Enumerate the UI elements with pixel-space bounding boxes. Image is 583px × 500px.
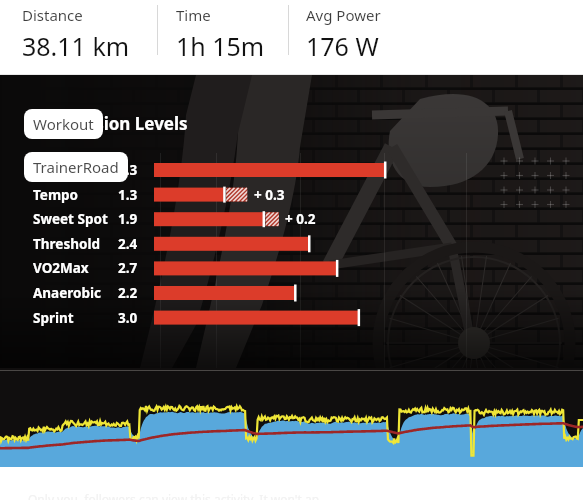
staticText: Workout [33, 114, 94, 134]
staticText: 3.0 [118, 309, 138, 327]
staticText: 176 W [306, 29, 379, 63]
staticText: 1h 15m [176, 29, 265, 63]
staticText: 1.9 [118, 210, 138, 228]
staticText: VO2Max [33, 259, 89, 277]
button[interactable]: TrainerRoad [24, 152, 128, 182]
staticText: Endurance [33, 161, 105, 179]
button[interactable]: Avg Power [306, 5, 381, 63]
staticText: 2.7 [118, 259, 138, 277]
button[interactable]: Workout [24, 109, 103, 139]
button[interactable]: Time [176, 5, 265, 63]
button[interactable]: Workout power and heart rate chart [0, 368, 583, 467]
staticText: TrainerRoad [33, 157, 119, 177]
staticText: 3.3 [118, 161, 138, 179]
staticText: Time [176, 5, 211, 25]
staticText: Avg Power [306, 5, 381, 25]
staticText: Threshold [33, 235, 100, 253]
staticText: 1.3 [118, 186, 138, 204]
staticText: Anaerobic [33, 284, 101, 302]
staticText: + 0.3 [254, 186, 285, 204]
staticText: Only you, followers can view this activi… [28, 491, 320, 500]
staticText: 2.4 [118, 235, 138, 253]
staticText: 38.11 km [22, 29, 130, 63]
staticText: Tempo [33, 186, 79, 204]
button[interactable]: Distance [22, 5, 130, 63]
staticText: Sweet Spot [33, 210, 108, 228]
staticText: 2.2 [118, 284, 138, 302]
staticText: Progression Levels [30, 112, 188, 135]
staticText: + 0.2 [285, 210, 316, 228]
staticText: Distance [22, 5, 83, 25]
staticText: Sprint [33, 309, 74, 327]
